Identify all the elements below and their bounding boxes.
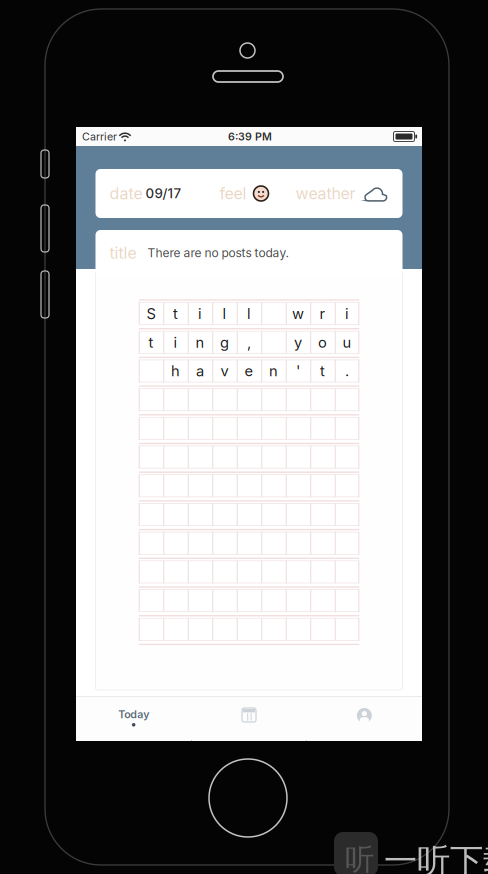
staticText: weather: [295, 184, 355, 203]
staticText: i: [198, 305, 202, 322]
staticText: v: [220, 362, 228, 380]
staticText: .: [345, 362, 349, 380]
staticText: n: [195, 333, 204, 351]
button[interactable]: Today: [76, 697, 191, 741]
staticText: t: [320, 362, 325, 380]
staticText: n: [269, 362, 278, 380]
staticText: S: [146, 305, 155, 322]
staticText: e: [244, 362, 253, 380]
staticText: feel: [219, 184, 246, 203]
staticText: t: [148, 333, 153, 351]
staticText: a: [196, 362, 204, 380]
staticText: i: [173, 333, 177, 351]
button[interactable]: Calendar: [191, 697, 307, 741]
staticText: Carrier: [82, 130, 117, 143]
button[interactable]: date: [95, 169, 402, 218]
staticText: u: [342, 333, 351, 351]
staticText: There are no posts today.: [147, 246, 288, 260]
button[interactable]: Profile: [307, 697, 422, 741]
staticText: w: [292, 305, 304, 322]
staticText: Today: [118, 708, 149, 721]
staticText: 09/17: [145, 185, 181, 201]
staticText: 听: [345, 841, 374, 874]
staticText: i: [345, 305, 349, 322]
staticText: o: [318, 333, 327, 351]
staticText: h: [171, 362, 180, 380]
staticText: title: [109, 243, 136, 263]
staticText: ': [296, 362, 300, 380]
button[interactable]: title: [95, 230, 402, 276]
staticText: ,: [247, 333, 251, 351]
staticText: t: [173, 305, 178, 322]
staticText: y: [294, 333, 302, 351]
staticText: r: [319, 305, 325, 322]
staticText: g: [220, 333, 229, 351]
staticText: 6:39 PM: [228, 130, 272, 143]
staticText: date: [109, 184, 142, 203]
staticText: 一听下载: [384, 840, 488, 874]
staticText: l: [247, 305, 251, 322]
staticText: l: [222, 305, 226, 322]
